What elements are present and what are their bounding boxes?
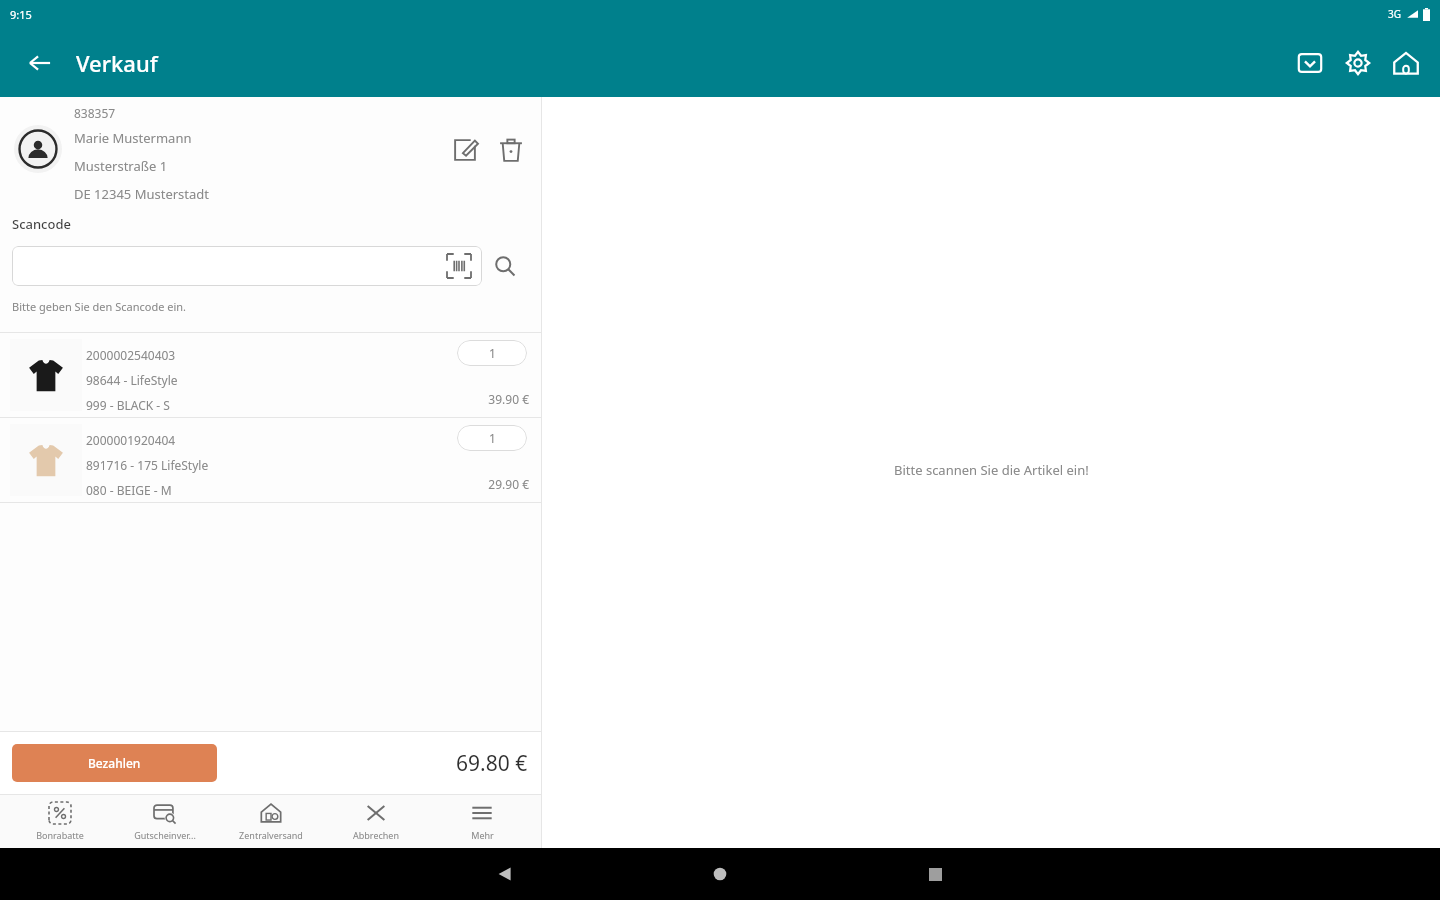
staticText: 080 - BEIGE - M [86,482,172,498]
button[interactable]: Settings [1334,39,1382,87]
staticText: 838357 [74,105,116,121]
staticText: 3G [1388,7,1401,21]
button[interactable]: Back [16,39,64,87]
button[interactable]: Scan barcode [12,246,482,286]
staticText: Verkauf [76,48,158,78]
button[interactable]: 2000002540403 [0,333,541,417]
staticText: Bitte scannen Sie die Artikel ein! [894,461,1089,479]
staticText: Bonrabatte [36,829,84,841]
button[interactable]: Recent apps [915,854,955,894]
button[interactable]: Search [482,243,528,289]
staticText: 2000002540403 [86,347,176,363]
button[interactable]: Back [485,854,525,894]
staticText: Scancode [12,215,71,233]
staticText: 891716 - 175 LifeStyle [86,457,209,473]
staticText: 1 [489,345,496,361]
button[interactable]: Home [700,854,740,894]
button[interactable]: Bonrabatte [14,794,106,848]
button[interactable]: Bezahlen [12,744,217,782]
button[interactable]: Gutscheinver... [119,794,211,848]
staticText: 999 - BLACK - S [86,397,170,413]
button[interactable]: Home [1382,39,1430,87]
staticText: 69.80 € [456,749,528,778]
staticText: 39.90 € [0,391,529,407]
button[interactable]: Scan barcode [444,251,474,281]
staticText: DE 12345 Musterstadt [74,185,210,203]
button[interactable]: 1 [457,340,527,366]
button[interactable]: Edit customer [444,129,486,171]
staticText: Bitte geben Sie den Scancode ein. [12,299,186,314]
button[interactable]: Mehr [436,794,528,848]
button[interactable]: Delete customer [490,129,532,171]
staticText: Abbrechen [353,829,399,841]
staticText: 98644 - LifeStyle [86,372,178,388]
button[interactable]: Abbrechen [330,794,422,848]
button[interactable]: 2000001920404 [0,418,541,502]
button[interactable]: 1 [457,425,527,451]
staticText: Gutscheinver... [134,829,196,841]
staticText: Zentralversand [239,829,303,841]
staticText: Mehr [471,829,494,841]
staticText: Bezahlen [88,755,141,771]
staticText: 29.90 € [0,476,529,492]
staticText: Marie Mustermann [74,129,192,147]
staticText: 1 [489,430,496,446]
staticText: 9:15 [10,7,32,22]
button[interactable]: Zentralversand [225,794,317,848]
staticText: Musterstraße 1 [74,157,168,175]
button[interactable]: Inbox [1286,39,1334,87]
staticText: 2000001920404 [86,432,176,448]
